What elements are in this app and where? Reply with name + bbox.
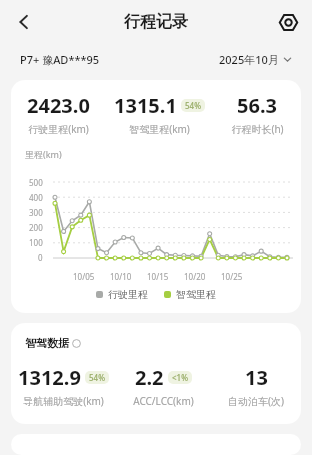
staticText: ACC/LCC(km) [133, 394, 194, 408]
staticText: 里程(km) [25, 148, 62, 160]
staticText: 10/25 [221, 271, 243, 282]
button[interactable]: 2025年10月 [219, 52, 292, 67]
staticText: 13 [245, 364, 268, 391]
staticText: 400 [29, 192, 43, 203]
staticText: 2025年10月 [219, 52, 279, 67]
button[interactable]: Back [6, 4, 42, 40]
staticText: 1315.1 [114, 92, 177, 119]
staticText: 100 [29, 237, 43, 248]
button[interactable]: 56.3 [213, 92, 301, 136]
button[interactable]: 智驾里程 [164, 288, 216, 301]
staticText: 10/05 [73, 271, 95, 282]
staticText: 智驾里程(km) [129, 122, 190, 136]
staticText: 1312.9 [18, 364, 81, 391]
button[interactable]: 2.2 [116, 364, 211, 408]
staticText: 200 [29, 222, 43, 233]
button[interactable]: 13 [211, 364, 301, 408]
staticText: 2.2 [135, 364, 164, 391]
staticText: 行驶里程 [108, 288, 148, 301]
staticText: 行程时长(h) [231, 122, 284, 136]
staticText: 行程记录 [124, 12, 188, 32]
staticText: 自动泊车(次) [228, 394, 284, 408]
staticText: 56.3 [237, 92, 277, 119]
staticText: 智驾数据 [25, 336, 69, 350]
staticText: 300 [29, 207, 43, 218]
staticText: 500 [29, 177, 43, 188]
button[interactable]: 智驾数据 [25, 336, 81, 350]
staticText: 10/15 [147, 271, 169, 282]
button[interactable]: 1312.9 [11, 364, 116, 408]
staticText: 54% [89, 372, 105, 383]
staticText: 10/10 [110, 271, 132, 282]
staticText: 0 [38, 252, 43, 263]
staticText: 导航辅助驾驶(km) [23, 394, 104, 408]
staticText: 10/20 [184, 271, 206, 282]
staticText: <1% [172, 372, 188, 383]
staticText: 2423.0 [27, 92, 90, 119]
button[interactable]: P7+ 豫AD***95 [20, 52, 100, 67]
button[interactable]: 行驶里程 [96, 288, 148, 301]
staticText: 54% [185, 100, 201, 111]
staticText: 智驾里程 [176, 288, 216, 301]
staticText: 行驶里程(km) [28, 122, 89, 136]
button[interactable]: 1315.1 [106, 92, 213, 136]
button[interactable]: Settings [270, 4, 306, 40]
button[interactable]: 2423.0 [11, 92, 106, 136]
